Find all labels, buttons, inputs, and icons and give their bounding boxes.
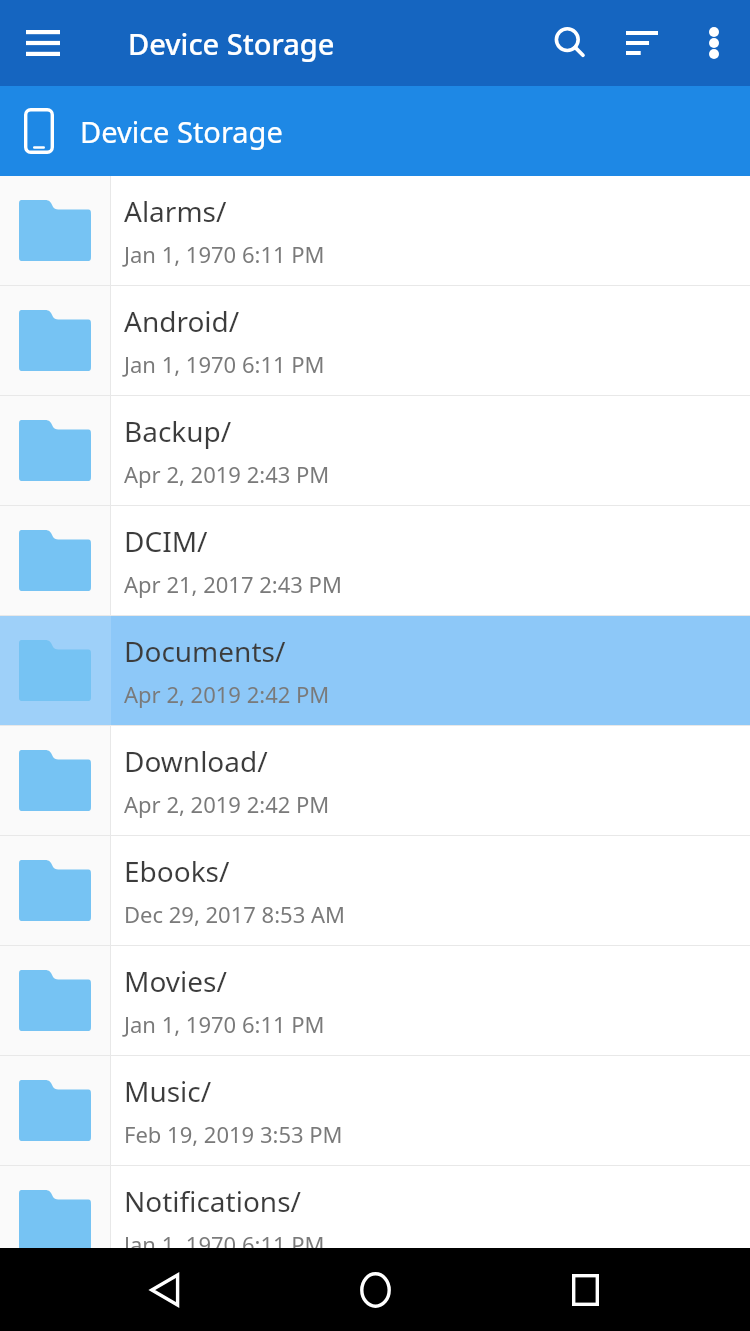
button[interactable]: Documents/	[0, 616, 750, 725]
staticText: Android/	[124, 302, 240, 340]
button[interactable]: More options	[678, 7, 750, 79]
staticText: Jan 1, 1970 6:11 PM	[124, 349, 325, 379]
staticText: Apr 21, 2017 2:43 PM	[124, 569, 342, 599]
button[interactable]: Music/	[0, 1056, 750, 1165]
staticText: Jan 1, 1970 6:11 PM	[124, 1009, 325, 1039]
button[interactable]: Home	[330, 1248, 420, 1331]
staticText: Documents/	[124, 632, 286, 670]
staticText: Feb 19, 2019 3:53 PM	[124, 1119, 343, 1149]
staticText: Jan 1, 1970 6:11 PM	[124, 239, 325, 269]
button[interactable]: Ebooks/	[0, 836, 750, 945]
staticText: DCIM/	[124, 522, 208, 560]
button[interactable]: Search	[534, 7, 606, 79]
staticText: Device Storage	[128, 24, 335, 63]
button[interactable]: Download/	[0, 726, 750, 835]
staticText: Apr 2, 2019 2:42 PM	[124, 679, 330, 709]
button[interactable]: Sort	[606, 7, 678, 79]
staticText: Device Storage	[80, 112, 283, 151]
button[interactable]: Recent apps	[540, 1248, 630, 1331]
staticText: Movies/	[124, 962, 227, 1000]
button[interactable]: DCIM/	[0, 506, 750, 615]
button[interactable]: Backup/	[0, 396, 750, 505]
staticText: Apr 2, 2019 2:42 PM	[124, 789, 330, 819]
button[interactable]: Alarms/	[0, 176, 750, 285]
button[interactable]: Back	[120, 1248, 210, 1331]
button[interactable]: Device Storage	[0, 86, 750, 176]
staticText: Ebooks/	[124, 852, 230, 890]
button[interactable]: Notifications/	[0, 1166, 750, 1248]
button[interactable]: Movies/	[0, 946, 750, 1055]
staticText: Download/	[124, 742, 268, 780]
staticText: Notifications/	[124, 1182, 301, 1220]
button[interactable]: Open navigation menu	[10, 10, 76, 76]
staticText: Dec 29, 2017 8:53 AM	[124, 899, 345, 929]
staticText: Backup/	[124, 412, 232, 450]
button[interactable]: Android/	[0, 286, 750, 395]
staticText: Alarms/	[124, 192, 227, 230]
staticText: Music/	[124, 1072, 212, 1110]
staticText: Apr 2, 2019 2:43 PM	[124, 459, 330, 489]
staticText: Jan 1, 1970 6:11 PM	[124, 1229, 325, 1248]
